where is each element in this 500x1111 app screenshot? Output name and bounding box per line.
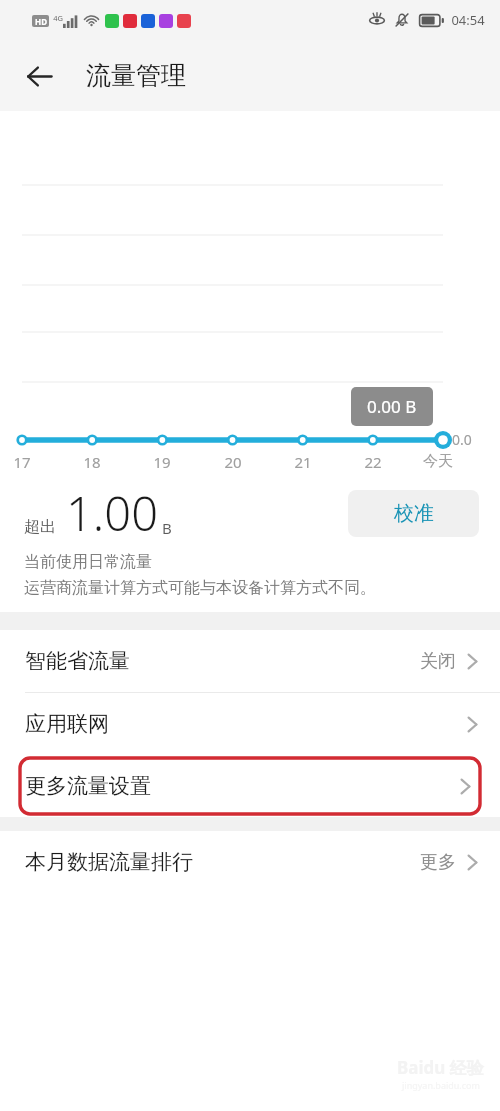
staticText: 1.00 — [66, 481, 158, 545]
staticText: 运营商流量计算方式可能与本设备计算方式不同。 — [24, 578, 376, 598]
staticText: 19 — [153, 452, 171, 472]
button[interactable]: 智能省流量 — [0, 630, 500, 692]
button[interactable]: 应用联网 — [0, 693, 500, 755]
staticText: 超出 — [24, 517, 56, 537]
staticText: 智能省流量 — [25, 648, 420, 674]
button[interactable]: 本月数据流量排行 — [0, 831, 500, 893]
staticText: B — [162, 518, 172, 538]
staticText: 关闭 — [420, 650, 456, 673]
staticText: 本月数据流量排行 — [25, 849, 420, 875]
staticText: 18 — [83, 452, 101, 472]
staticText: 0.00 B — [367, 395, 417, 418]
staticText: 更多 — [420, 851, 456, 874]
staticText: 21 — [294, 452, 312, 472]
staticText: HD — [35, 16, 47, 27]
staticText: 当前使用日常流量 — [24, 552, 152, 572]
staticText: 22 — [364, 452, 382, 472]
staticText: 更多流量设置 — [25, 773, 459, 799]
staticText: 应用联网 — [25, 711, 466, 737]
staticText: 20 — [224, 452, 242, 472]
staticText: 今天 — [423, 452, 453, 471]
staticText: 校准 — [394, 501, 434, 526]
button[interactable]: Back — [12, 49, 66, 103]
staticText: jingyan.baidu.com — [402, 1079, 480, 1091]
staticText: 17 — [13, 452, 31, 472]
button[interactable]: 更多流量设置 — [20, 758, 480, 814]
staticText: 流量管理 — [86, 60, 186, 91]
staticText: 04:54 — [451, 11, 485, 29]
staticText: 4G — [53, 13, 63, 23]
staticText: 0.0 — [452, 430, 472, 449]
button[interactable]: 校准 — [348, 490, 479, 537]
staticText: Baidu 经验 — [397, 1056, 484, 1079]
